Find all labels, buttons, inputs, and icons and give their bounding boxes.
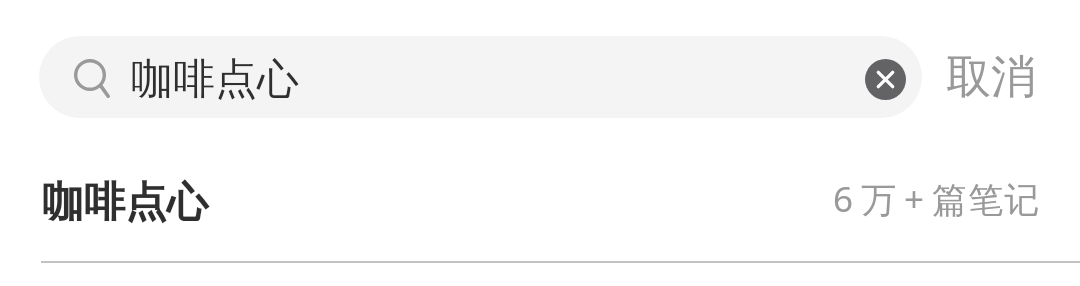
staticText: 取消 <box>946 49 1036 106</box>
staticText: 6 万 + 篇笔记 <box>833 175 1041 223</box>
button[interactable]: 咖啡点心 <box>0 118 1080 262</box>
button[interactable]: 咖啡点心 <box>39 36 922 118</box>
staticText: 咖啡点心 <box>131 53 299 106</box>
button[interactable]: Clear search text <box>865 59 906 100</box>
button[interactable]: 取消 <box>922 36 1080 118</box>
staticText: 咖啡点心 <box>42 176 208 228</box>
